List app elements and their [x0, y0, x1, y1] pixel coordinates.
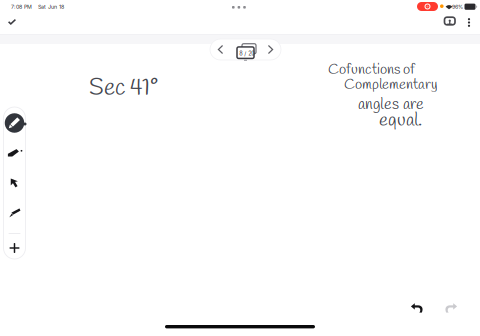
button[interactable]: Next page: [261, 39, 279, 60]
button[interactable]: Screen mirroring: [438, 12, 461, 30]
staticText: Sec 41°: [89, 73, 158, 104]
button[interactable]: Previous page: [211, 39, 229, 60]
button[interactable]: Eraser tool: [3, 140, 25, 166]
staticText: 96%: [452, 3, 463, 10]
button[interactable]: Done: [1, 13, 23, 30]
button[interactable]: Redo: [434, 293, 468, 323]
staticText: 7:08 PM Sat Jun 18: [11, 3, 64, 10]
button[interactable]: Add tool: [3, 235, 25, 261]
button[interactable]: Marker tool: [3, 200, 25, 226]
button[interactable]: Pen tool: [3, 110, 25, 136]
button[interactable]: Undo: [400, 293, 434, 323]
button[interactable]: Selection tool: [3, 170, 25, 196]
staticText: equal.: [379, 108, 422, 133]
staticText: Cofunctions of: [328, 60, 415, 80]
staticText: 8 / 20: [239, 50, 255, 57]
staticText: angles are: [358, 94, 424, 115]
staticText: Complementary: [344, 75, 437, 95]
button[interactable]: More options: [461, 14, 476, 30]
